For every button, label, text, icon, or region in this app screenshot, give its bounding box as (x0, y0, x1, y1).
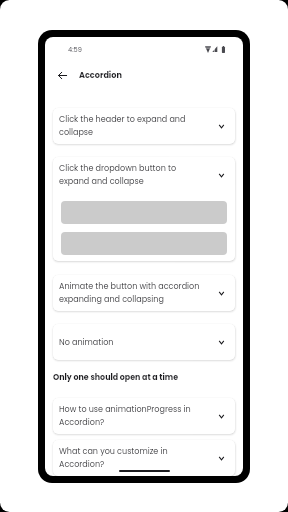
staticText: 4:59 (68, 45, 82, 54)
staticText: Click the dropdown button to expand and … (59, 163, 204, 187)
button[interactable]: Click the header to expand and collapse (53, 108, 235, 144)
button[interactable]: Animate the button with accordion expand… (53, 275, 235, 311)
staticText: Click the header to expand and collapse (59, 114, 204, 138)
staticText: No animation (59, 337, 204, 348)
staticText: Only one should open at a time (53, 372, 179, 383)
staticText: What can you customize in Accordion? (59, 446, 204, 470)
button[interactable]: No animation (53, 324, 235, 360)
button[interactable]: Click the dropdown button to expand and … (53, 157, 235, 261)
staticText: How to use animationProgress in Accordio… (59, 404, 204, 428)
button[interactable]: What can you customize in Accordion? (53, 440, 235, 476)
staticText: Animate the button with accordion expand… (59, 281, 204, 305)
button[interactable]: Back (53, 66, 71, 84)
button[interactable]: How to use animationProgress in Accordio… (53, 398, 235, 434)
staticText: Accordion (79, 69, 122, 80)
